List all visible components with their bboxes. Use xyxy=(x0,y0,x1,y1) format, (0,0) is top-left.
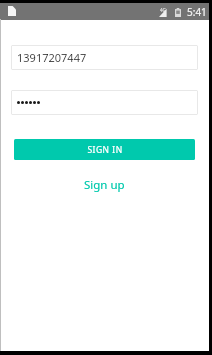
button[interactable]: Sign up xyxy=(0,175,209,195)
staticText: SIGN IN xyxy=(87,144,123,156)
staticText: 13917207447 xyxy=(17,50,87,65)
staticText: 4G xyxy=(160,7,166,13)
staticText: Sign up xyxy=(84,177,125,193)
other: 4G signal xyxy=(159,7,167,17)
other: Battery xyxy=(175,8,181,17)
button[interactable]: Password xyxy=(11,90,198,115)
other: Notification xyxy=(8,6,16,16)
button[interactable]: SIGN IN xyxy=(14,139,195,160)
button[interactable]: Phone number xyxy=(11,45,198,70)
staticText: 5:41 xyxy=(187,5,207,19)
